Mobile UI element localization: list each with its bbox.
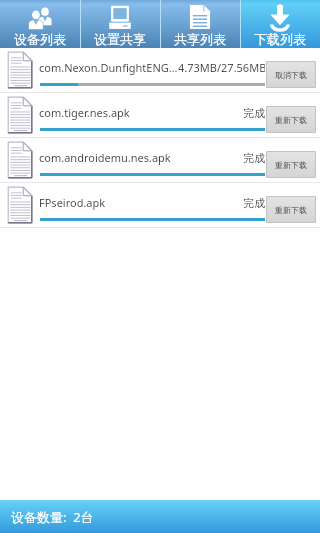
- staticText: 设置共享: [94, 31, 146, 47]
- staticText: 4.73MB/27.56MB: [178, 60, 265, 75]
- staticText: 设备数量: 2台: [11, 508, 94, 526]
- staticText: 重新下载: [275, 160, 307, 170]
- staticText: 取消下载: [275, 70, 307, 80]
- button[interactable]: 取消下载: [266, 61, 316, 88]
- button[interactable]: 共享列表: [160, 0, 240, 48]
- button[interactable]: 重新下载: [266, 106, 316, 133]
- staticText: 完成: [243, 196, 265, 210]
- staticText: 设备列表: [14, 31, 66, 47]
- staticText: 重新下载: [275, 205, 307, 215]
- staticText: 下载列表: [254, 31, 306, 47]
- button[interactable]: com.androidemu.nes.apk: [0, 138, 320, 183]
- button[interactable]: 重新下载: [266, 196, 316, 223]
- button[interactable]: 设备列表: [0, 0, 80, 48]
- staticText: FPseirod.apk: [39, 195, 106, 210]
- button[interactable]: 设置共享: [80, 0, 160, 48]
- button[interactable]: 下载列表: [240, 0, 320, 48]
- button[interactable]: 重新下载: [266, 151, 316, 178]
- staticText: com.Nexon.DunfightENG…: [39, 60, 178, 75]
- staticText: 完成: [243, 151, 265, 165]
- button[interactable]: 设备数量: 2台: [0, 500, 320, 533]
- staticText: 完成: [243, 106, 265, 120]
- button[interactable]: com.tiger.nes.apk: [0, 93, 320, 138]
- button[interactable]: com.Nexon.DunfightENG…: [0, 48, 320, 93]
- staticText: com.androidemu.nes.apk: [39, 150, 171, 165]
- button[interactable]: FPseirod.apk: [0, 183, 320, 228]
- staticText: com.tiger.nes.apk: [39, 105, 130, 120]
- staticText: 共享列表: [174, 31, 226, 47]
- staticText: 重新下载: [275, 115, 307, 125]
